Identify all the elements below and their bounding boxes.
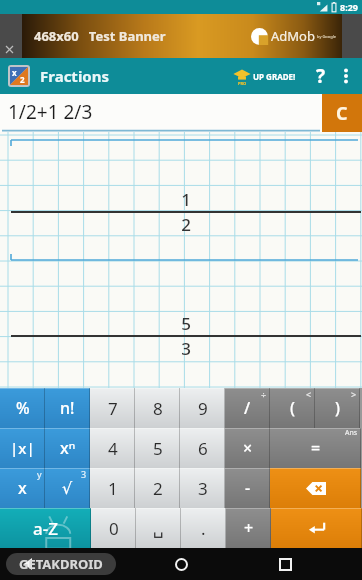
staticText: 4 <box>108 437 118 460</box>
button[interactable]: Backspace <box>270 468 361 508</box>
staticText: ␣ <box>153 518 164 538</box>
button[interactable]: = <box>270 428 361 468</box>
button[interactable]: 3 <box>180 468 225 508</box>
button[interactable]: 4 <box>90 428 135 468</box>
button[interactable]: Home <box>166 549 196 579</box>
staticText: x <box>12 67 17 78</box>
button[interactable]: 7 <box>90 388 135 428</box>
button[interactable]: 6 <box>180 428 225 468</box>
staticText: 9 <box>198 397 208 420</box>
staticText: ÷ <box>261 388 267 400</box>
staticText: 2 <box>153 477 163 500</box>
button[interactable]: Back <box>14 549 44 579</box>
button[interactable]: 1/2+1 2/3 <box>0 94 322 132</box>
button[interactable]: xⁿ <box>45 428 90 468</box>
button[interactable]: 9 <box>180 388 225 428</box>
button[interactable]: √ <box>45 468 90 508</box>
staticText: 468x60 Test Banner <box>34 27 166 45</box>
button[interactable]: |x| <box>0 428 45 468</box>
staticText: 3 <box>81 468 87 480</box>
staticText: 0 <box>109 517 119 540</box>
button[interactable]: 8 <box>135 388 180 428</box>
staticText: UP GRADE! <box>253 71 296 82</box>
button[interactable]: More options <box>334 64 358 88</box>
staticText: / <box>244 397 251 419</box>
staticText: - <box>245 477 251 499</box>
staticText: 5 <box>153 437 163 460</box>
staticText: ? <box>316 63 326 89</box>
button[interactable]: / <box>225 388 270 428</box>
button[interactable]: 2 <box>135 468 180 508</box>
staticText: 8:29 <box>340 1 358 13</box>
staticText: × <box>243 437 253 459</box>
staticText: 3 <box>198 477 208 500</box>
staticText: 7 <box>108 397 118 420</box>
staticText: √ <box>62 479 73 498</box>
staticText: 3 <box>181 337 191 360</box>
button[interactable]: 5 <box>135 428 180 468</box>
button[interactable]: Recent apps <box>270 549 300 579</box>
staticText: = <box>311 437 321 459</box>
button[interactable]: Help <box>308 63 334 89</box>
staticText: |x| <box>10 438 35 458</box>
button[interactable]: n! <box>45 388 90 428</box>
staticText: % <box>16 397 30 419</box>
staticText: + <box>244 517 254 539</box>
button[interactable]: Enter <box>271 508 362 548</box>
staticText: Ans <box>345 428 358 438</box>
button[interactable]: Close ad <box>3 43 16 56</box>
staticText: Fractions <box>40 66 110 86</box>
button[interactable]: + <box>226 508 271 548</box>
staticText: 1 <box>181 188 191 211</box>
staticText: a-Z <box>33 517 58 540</box>
button[interactable]: 1 <box>90 468 135 508</box>
staticText: 1/2+1 2/3 <box>8 99 93 125</box>
staticText: 1 <box>108 477 118 500</box>
staticText: C <box>336 101 348 126</box>
button[interactable]: 0 <box>91 508 136 548</box>
staticText: x <box>18 477 27 499</box>
staticText: 2 <box>181 213 191 236</box>
staticText: y <box>37 468 42 480</box>
staticText: . <box>201 517 206 540</box>
staticText: n! <box>60 397 75 419</box>
button[interactable]: . <box>181 508 226 548</box>
button[interactable]: C <box>322 94 362 132</box>
staticText: xⁿ <box>60 437 76 459</box>
staticText: > <box>351 388 357 400</box>
button[interactable]: × <box>225 428 270 468</box>
staticText: ) <box>335 397 340 419</box>
button[interactable]: ␣ <box>136 508 181 548</box>
staticText: 5 <box>181 312 191 335</box>
staticText: by Google <box>317 34 336 39</box>
button[interactable]: App icon <box>10 67 28 85</box>
button[interactable]: ( <box>270 388 315 428</box>
staticText: GETAKDROID <box>19 555 103 573</box>
button[interactable]: ) <box>315 388 360 428</box>
staticText: 6 <box>198 437 208 460</box>
staticText: 2 <box>20 74 25 85</box>
button[interactable]: Letters <box>0 508 91 548</box>
staticText: ( <box>290 397 295 419</box>
button[interactable]: % <box>0 388 45 428</box>
staticText: 8 <box>153 397 163 420</box>
button[interactable]: PRO <box>231 66 298 86</box>
staticText: PRO <box>238 81 247 86</box>
staticText: < <box>306 388 312 400</box>
button[interactable]: - <box>225 468 270 508</box>
button[interactable]: x <box>0 468 45 508</box>
staticText: AdMob <box>271 27 315 45</box>
